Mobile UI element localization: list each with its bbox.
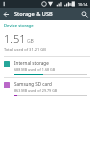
staticText: Samsung SD card [14, 81, 52, 87]
staticText: Device storage [4, 23, 34, 29]
button[interactable]: Back [0, 8, 12, 20]
staticText: Total used of 31.21 GB [4, 47, 46, 52]
button[interactable]: Samsung SD card [0, 78, 90, 98]
staticText: 688 MB used of 1.68 GB [14, 67, 56, 72]
staticText: 1.51 [4, 31, 26, 46]
staticText: 10:14 [78, 2, 88, 7]
button[interactable]: Internal storage [0, 57, 90, 77]
staticText: Internal storage [14, 60, 49, 66]
button[interactable]: Search [78, 8, 90, 20]
staticText: 863 MB used of 29.79 GB [14, 88, 58, 93]
staticText: Storage & USB [14, 10, 53, 18]
staticText: GB [27, 38, 34, 45]
staticText: 96% [68, 2, 76, 7]
